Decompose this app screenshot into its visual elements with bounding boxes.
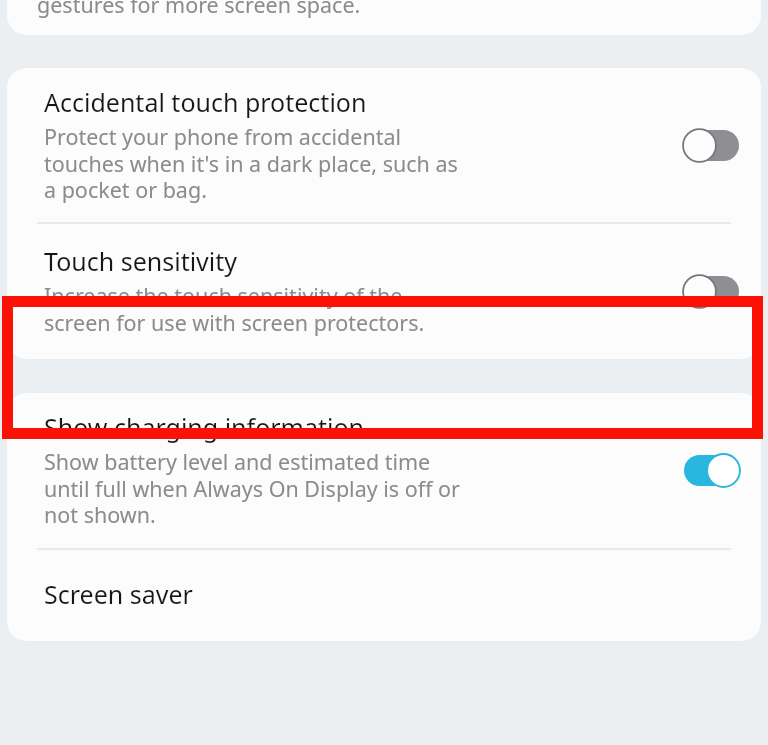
button[interactable]: Screen saver [7, 550, 761, 641]
staticText: Screen saver [44, 577, 193, 611]
staticText: Touch sensitivity [44, 244, 238, 278]
button[interactable]: Show charging information [680, 448, 742, 492]
staticText: Show battery level and estimated time un… [44, 447, 472, 529]
staticText: Increase the touch sensitivity of the sc… [44, 281, 464, 337]
staticText: Accidental touch protection [44, 85, 367, 119]
button[interactable]: Accidental touch protection [7, 68, 761, 222]
staticText: Show charging information [44, 410, 365, 444]
staticText: Protect your phone from accidental touch… [44, 122, 459, 204]
button[interactable]: gestures for more screen space. [7, 0, 761, 35]
button[interactable]: Touch sensitivity [680, 269, 742, 313]
staticText: gestures for more screen space. [37, 0, 361, 19]
button[interactable]: Touch sensitivity [7, 224, 761, 359]
button[interactable]: Show charging information [7, 393, 761, 548]
button[interactable]: Accidental touch protection [680, 123, 742, 167]
